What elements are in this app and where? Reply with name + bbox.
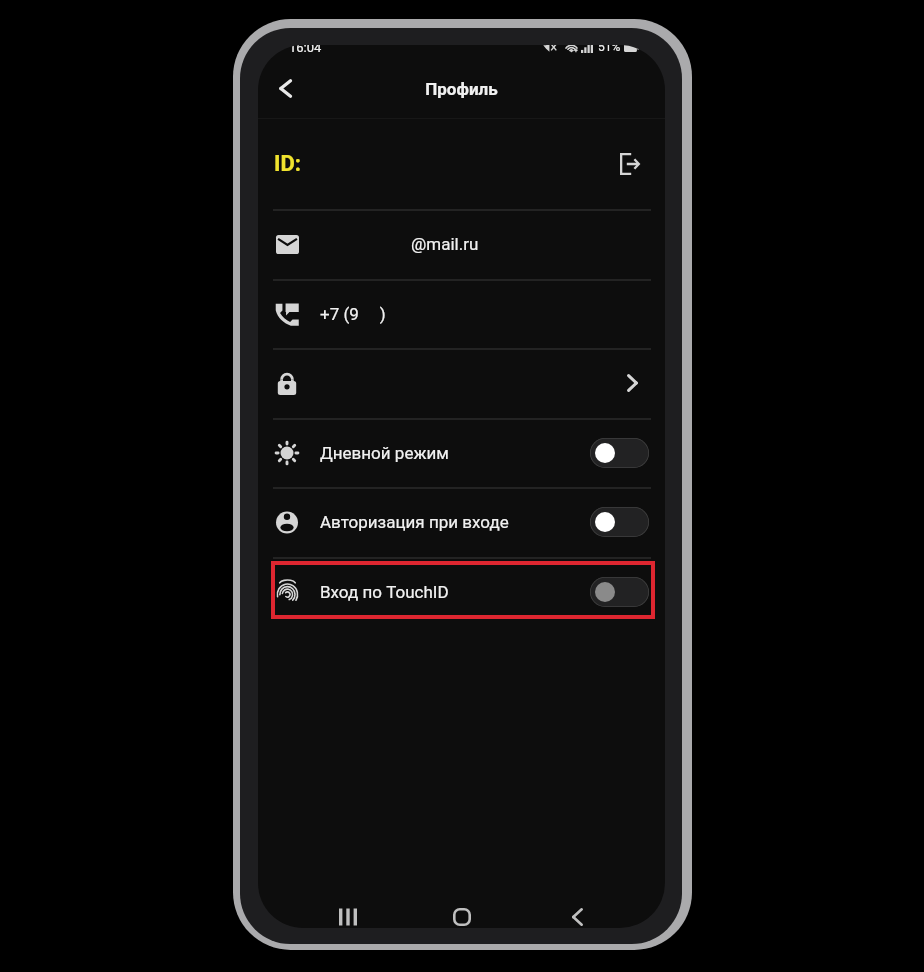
button[interactable]: Вход по TouchID: [258, 557, 665, 627]
button[interactable]: Back: [555, 895, 599, 928]
staticText: +7 (9 ): [320, 304, 386, 324]
button[interactable]: Home: [440, 895, 484, 928]
button[interactable]: [590, 577, 649, 607]
button[interactable]: Recent apps: [326, 895, 370, 928]
staticText: 16:04: [289, 45, 322, 55]
button[interactable]: Дневной режим: [258, 418, 665, 488]
button[interactable]: Back: [265, 68, 306, 109]
staticText: @mail.ru: [411, 234, 479, 254]
button[interactable]: Log out: [612, 146, 648, 182]
button[interactable]: Авторизация при входе: [258, 487, 665, 557]
staticText: Профиль: [258, 79, 665, 99]
button[interactable]: ID:: [258, 118, 665, 209]
button[interactable]: [590, 507, 649, 537]
button[interactable]: @mail.ru: [258, 209, 665, 279]
staticText: 51%: [598, 45, 621, 54]
button[interactable]: [590, 438, 649, 468]
button[interactable]: [258, 348, 665, 418]
staticText: Вход по TouchID: [320, 582, 449, 602]
button[interactable]: +7 (9 ): [258, 279, 665, 349]
staticText: ID:: [274, 151, 301, 177]
staticText: Авторизация при входе: [320, 512, 509, 532]
staticText: Дневной режим: [320, 443, 449, 463]
